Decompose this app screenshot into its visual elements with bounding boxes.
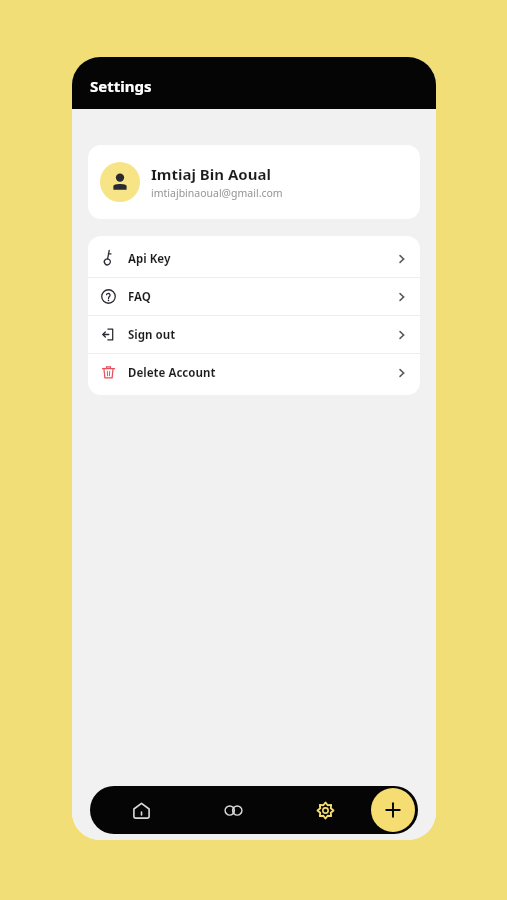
staticText: Imtiaj Bin Aoual bbox=[151, 164, 271, 184]
button[interactable]: FAQ bbox=[88, 278, 420, 315]
staticText: Settings bbox=[90, 76, 152, 96]
staticText: FAQ bbox=[128, 289, 151, 305]
button[interactable]: Add bbox=[371, 788, 415, 832]
staticText: Sign out bbox=[128, 327, 176, 343]
button[interactable]: Settings bbox=[279, 786, 371, 834]
button[interactable]: Home bbox=[96, 786, 187, 834]
button[interactable]: Sign out bbox=[88, 316, 420, 353]
staticText: Api Key bbox=[128, 251, 171, 267]
button[interactable]: Links bbox=[187, 786, 279, 834]
button[interactable]: Imtiaj Bin Aoual bbox=[88, 145, 420, 219]
button[interactable]: Delete Account bbox=[88, 354, 420, 391]
staticText: Delete Account bbox=[128, 365, 216, 381]
staticText: imtiajbinaoual@gmail.com bbox=[151, 186, 283, 200]
button[interactable]: Api Key bbox=[88, 240, 420, 277]
